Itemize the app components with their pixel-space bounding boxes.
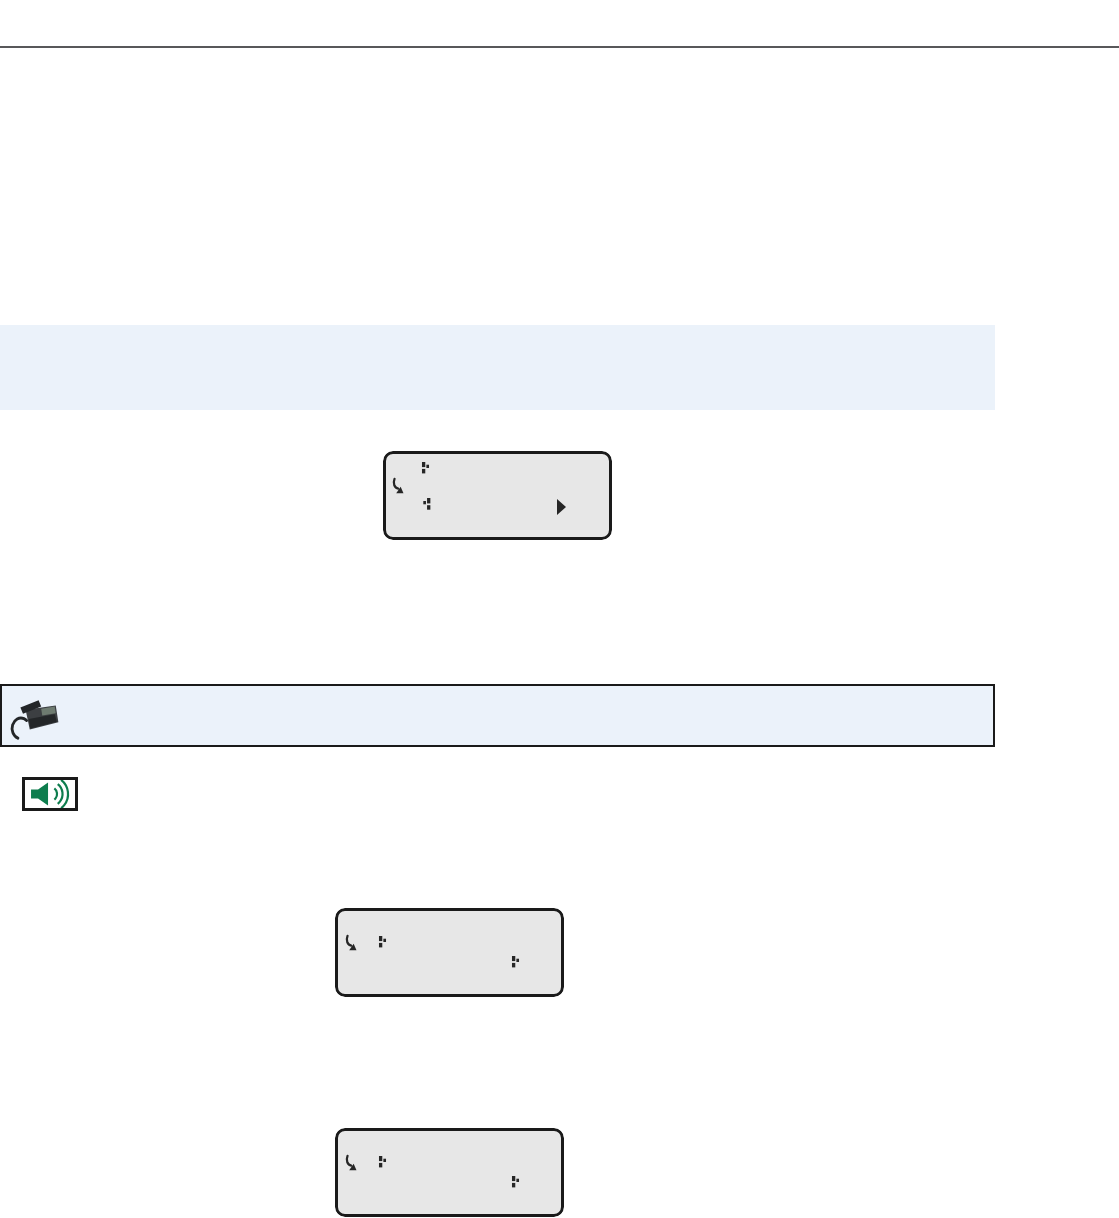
- other: Desk phone: [10, 692, 62, 744]
- button[interactable]: [383, 451, 612, 540]
- button[interactable]: [335, 908, 564, 997]
- button[interactable]: Play audio: [22, 777, 78, 811]
- button[interactable]: [0, 684, 995, 747]
- button[interactable]: [335, 1128, 564, 1217]
